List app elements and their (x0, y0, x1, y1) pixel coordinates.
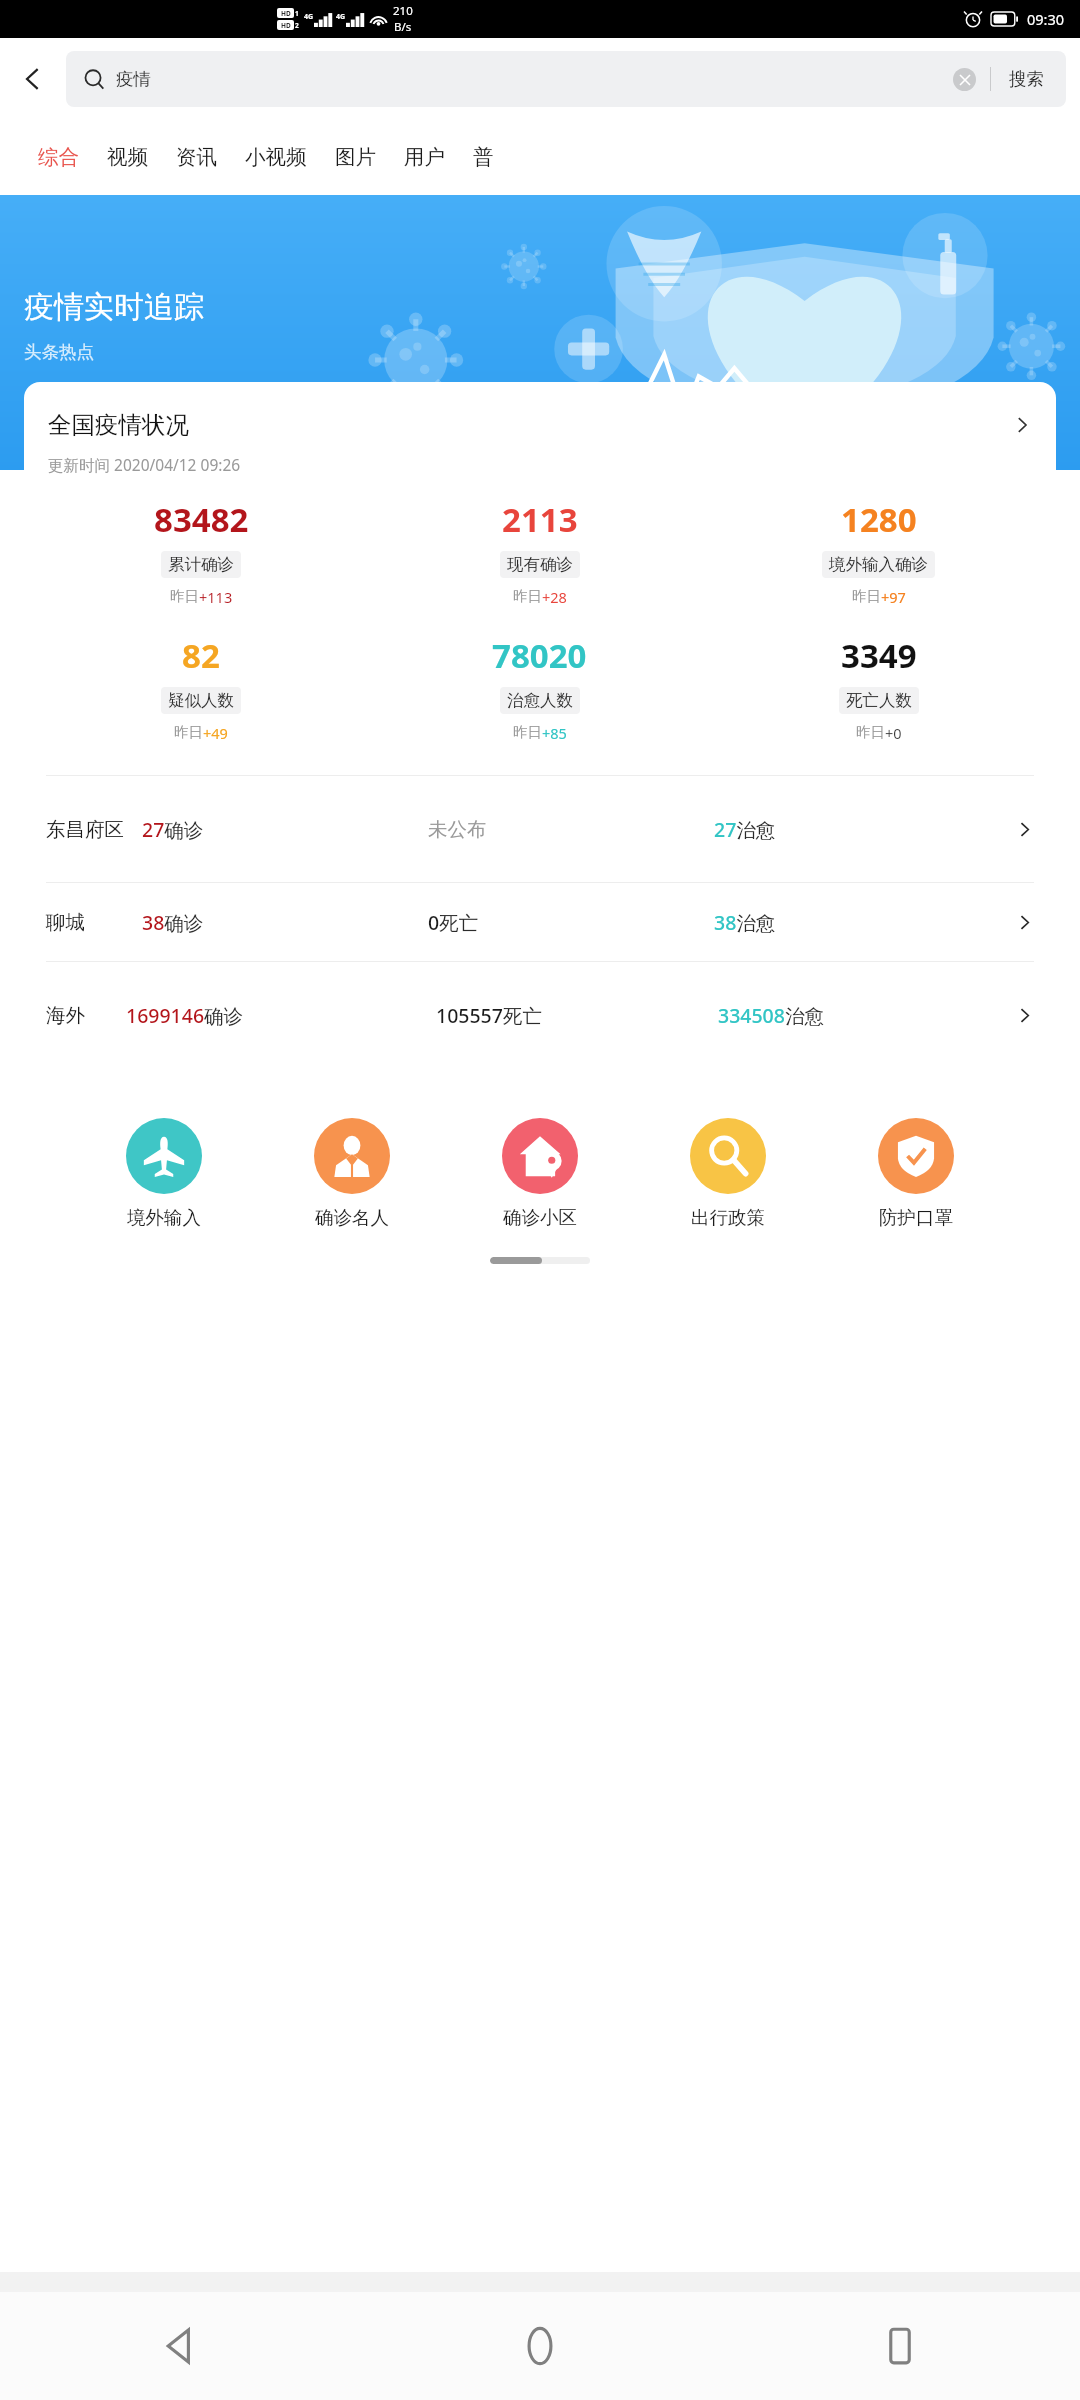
staticText: 境外输入 (127, 1206, 201, 1229)
staticText: 资讯 (176, 144, 217, 170)
staticText: 昨日 (174, 723, 203, 741)
staticText: 2113 (502, 497, 578, 542)
button[interactable]: Clear (953, 68, 976, 91)
staticText: 现有确诊 (507, 554, 573, 575)
staticText: 82 (182, 633, 220, 678)
staticText: 78020 (492, 633, 587, 678)
staticText: 昨日 (513, 587, 542, 605)
staticText: 东昌府区 (46, 817, 124, 842)
staticText: 疫情实时追踪 (24, 288, 204, 326)
staticText: 4G (304, 12, 314, 22)
staticText: 09:30 (1027, 9, 1065, 29)
button[interactable]: 境外输入 (122, 1116, 206, 1231)
staticText: 用户 (404, 144, 445, 170)
staticText: HD (281, 9, 291, 18)
button[interactable]: 资讯 (162, 119, 231, 195)
staticText: 搜索 (1009, 68, 1044, 90)
staticText: 图片 (335, 144, 376, 170)
staticText: 确诊小区 (503, 1206, 577, 1229)
staticText: 未公布 (428, 817, 487, 842)
button[interactable]: 确诊名人 (310, 1116, 394, 1231)
staticText: 小视频 (245, 144, 307, 170)
staticText: 境外输入确诊 (829, 554, 928, 575)
staticText: 治愈人数 (507, 690, 573, 711)
staticText: 聊城 (46, 910, 85, 935)
staticText: 综合 (38, 144, 79, 170)
button[interactable]: 用户 (390, 119, 459, 195)
staticText: 1280 (841, 497, 917, 542)
staticText: B/s (394, 19, 412, 35)
staticText: 疫情 (116, 68, 151, 90)
staticText: 27治愈 (714, 816, 776, 843)
staticText: 死亡人数 (846, 690, 912, 711)
staticText: 更新时间 2020/04/12 09:26 (48, 454, 241, 475)
staticText: 0死亡 (428, 909, 479, 936)
staticText: HD (281, 21, 291, 30)
staticText: 1699146确诊 (126, 1002, 244, 1029)
button[interactable]: Back (0, 2292, 360, 2400)
staticText: 83482 (154, 497, 249, 542)
staticText: 视频 (107, 144, 148, 170)
staticText: 2 (295, 21, 299, 30)
staticText: 疑似人数 (168, 690, 234, 711)
staticText: 210 (393, 3, 413, 19)
button[interactable]: 确诊小区 (498, 1116, 582, 1231)
button[interactable]: 视频 (93, 119, 162, 195)
button[interactable]: 防护口罩 (874, 1116, 958, 1231)
staticText: 38治愈 (714, 909, 776, 936)
staticText: 昨日 (856, 723, 885, 741)
button[interactable]: Home (360, 2292, 720, 2400)
button[interactable]: 出行政策 (686, 1116, 770, 1231)
button[interactable]: 东昌府区 (24, 776, 1056, 882)
button[interactable]: Back (0, 38, 66, 119)
button[interactable]: 普 (459, 119, 508, 195)
staticText: 昨日 (513, 723, 542, 741)
staticText: +28 (542, 587, 567, 607)
button[interactable]: 图片 (321, 119, 390, 195)
staticText: +0 (885, 723, 902, 743)
staticText: 38确诊 (142, 909, 204, 936)
staticText: 334508治愈 (718, 1002, 824, 1029)
button[interactable]: 搜索 (1005, 68, 1048, 90)
staticText: 1 (295, 9, 299, 18)
button[interactable]: 小视频 (231, 119, 321, 195)
button[interactable]: 海外 (24, 962, 1056, 1068)
button[interactable]: 综合 (24, 119, 93, 195)
staticText: 105557死亡 (436, 1002, 542, 1029)
staticText: +97 (881, 587, 906, 607)
button[interactable]: 聊城 (24, 883, 1056, 961)
staticText: 海外 (46, 1003, 85, 1028)
staticText: +85 (542, 723, 567, 743)
staticText: 普 (473, 144, 494, 170)
staticText: 27确诊 (142, 816, 204, 843)
button[interactable]: Recents (720, 2292, 1080, 2400)
staticText: +49 (203, 723, 228, 743)
staticText: 4G (336, 12, 346, 22)
button[interactable]: 全国疫情状况 (24, 406, 1056, 444)
staticText: 确诊名人 (315, 1206, 389, 1229)
staticText: 出行政策 (691, 1206, 765, 1229)
button[interactable]: 疫情 (66, 51, 1066, 107)
staticText: 累计确诊 (168, 554, 234, 575)
staticText: +113 (199, 587, 233, 607)
staticText: 昨日 (170, 587, 199, 605)
staticText: 昨日 (852, 587, 881, 605)
staticText: 防护口罩 (879, 1206, 953, 1229)
staticText: 全国疫情状况 (48, 410, 189, 440)
staticText: 头条热点 (24, 341, 94, 363)
staticText: 3349 (841, 633, 917, 678)
